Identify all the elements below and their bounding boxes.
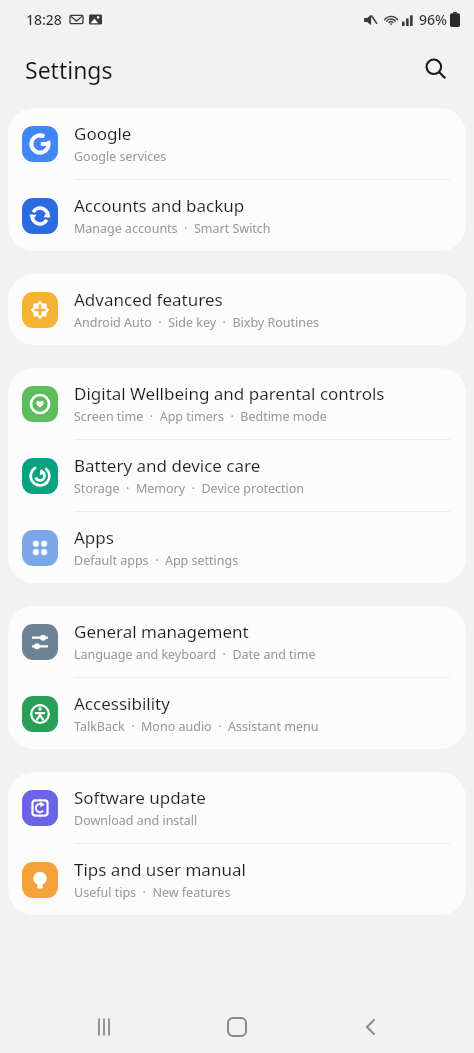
staticText: Tips and user manual [74, 858, 246, 881]
staticText: Google services [74, 148, 167, 165]
button[interactable]: Back [341, 1001, 401, 1053]
staticText: TalkBack · Mono audio · Assistant menu [74, 718, 319, 735]
staticText: Advanced features [74, 288, 223, 311]
button[interactable]: General management [8, 606, 466, 677]
button[interactable]: Software update [8, 772, 466, 843]
staticText: Manage accounts · Smart Switch [74, 220, 271, 237]
staticText: Download and install [74, 812, 198, 829]
staticText: Accessibility [74, 692, 170, 715]
button[interactable]: Search settings [416, 49, 456, 89]
button[interactable]: Recent apps [74, 1001, 134, 1053]
staticText: Settings [25, 54, 113, 85]
staticText: Apps [74, 526, 114, 549]
staticText: Storage · Memory · Device protection [74, 480, 305, 497]
staticText: Digital Wellbeing and parental controls [74, 382, 385, 405]
staticText: 18:28 [26, 10, 62, 29]
staticText: 96% [419, 10, 447, 29]
button[interactable]: Battery and device care [8, 440, 466, 511]
button[interactable]: Accessibility [8, 678, 466, 749]
staticText: Android Auto · Side key · Bixby Routines [74, 314, 320, 331]
staticText: Battery and device care [74, 454, 261, 477]
button[interactable]: Digital Wellbeing and parental controls [8, 368, 466, 439]
staticText: Default apps · App settings [74, 552, 239, 569]
button[interactable]: Advanced features [8, 274, 466, 345]
button[interactable]: Tips and user manual [8, 844, 466, 915]
staticText: Useful tips · New features [74, 884, 231, 901]
button[interactable]: Home [207, 1001, 267, 1053]
staticText: Software update [74, 786, 206, 809]
staticText: Accounts and backup [74, 194, 245, 217]
staticText: Screen time · App timers · Bedtime mode [74, 408, 327, 425]
staticText: General management [74, 620, 249, 643]
button[interactable]: Google [8, 108, 466, 179]
button[interactable]: Accounts and backup [8, 180, 466, 251]
staticText: Language and keyboard · Date and time [74, 646, 316, 663]
staticText: Google [74, 122, 132, 145]
button[interactable]: Apps [8, 512, 466, 583]
